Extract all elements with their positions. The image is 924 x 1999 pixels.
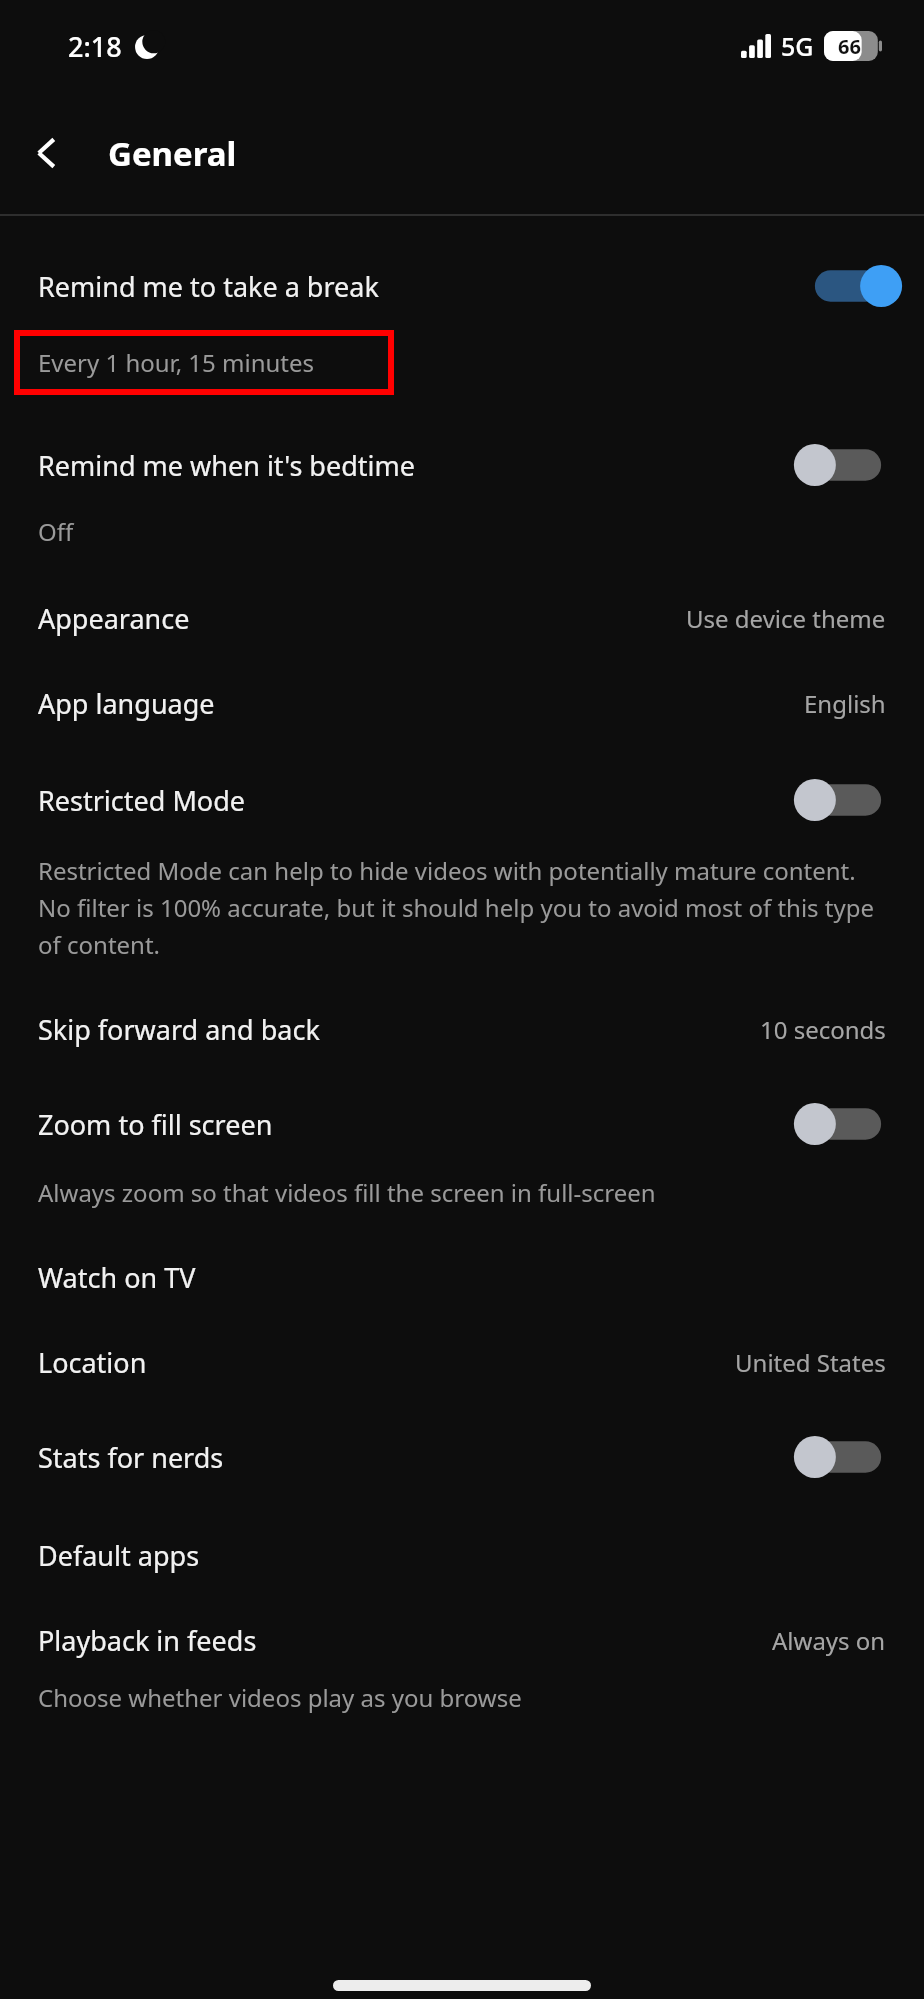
staticText: General — [108, 131, 237, 176]
staticText: United States — [735, 1346, 886, 1379]
staticText: Appearance — [38, 600, 686, 637]
button[interactable]: Remind me to take a break — [0, 216, 924, 395]
staticText: Playback in feeds — [38, 1622, 772, 1659]
staticText: App language — [38, 685, 804, 722]
staticText: Always zoom so that videos fill the scre… — [38, 1176, 656, 1209]
staticText: 2:18 — [68, 28, 122, 65]
staticText: Stats for nerds — [38, 1439, 802, 1476]
button[interactable]: App language — [0, 637, 924, 722]
button[interactable]: Default apps — [0, 1485, 924, 1574]
button[interactable]: Toggle on — [802, 258, 894, 314]
button[interactable]: Playback in feeds — [0, 1574, 924, 1714]
button[interactable]: Toggle off — [802, 772, 894, 828]
staticText: 5G — [781, 29, 814, 63]
staticText: Choose whether videos play as you browse — [38, 1681, 522, 1714]
button[interactable]: Skip forward and back — [0, 961, 924, 1048]
staticText: Every 1 hour, 15 minutes — [38, 346, 315, 379]
button[interactable]: Watch on TV — [0, 1209, 924, 1296]
button[interactable]: Back — [14, 120, 80, 186]
button[interactable]: Appearance — [0, 548, 924, 637]
staticText: Remind me to take a break — [38, 268, 802, 305]
button[interactable]: Restricted Mode — [0, 722, 924, 961]
staticText: Always on — [772, 1624, 886, 1657]
button[interactable]: Stats for nerds — [0, 1381, 924, 1485]
staticText: Zoom to fill screen — [38, 1106, 802, 1143]
button[interactable]: Remind me when it's bedtime — [0, 395, 924, 548]
button[interactable]: Toggle off — [802, 1429, 894, 1485]
button[interactable]: Toggle off — [802, 437, 894, 493]
staticText: Use device theme — [686, 602, 886, 635]
staticText: Restricted Mode — [38, 782, 802, 819]
staticText: Restricted Mode can help to hide videos … — [38, 854, 876, 961]
staticText: English — [804, 687, 886, 720]
staticText: 10 seconds — [760, 1013, 886, 1046]
staticText: Watch on TV — [38, 1259, 886, 1296]
staticText: Skip forward and back — [38, 1011, 760, 1048]
staticText: Off — [38, 515, 74, 548]
staticText: 66 — [838, 33, 861, 60]
staticText: Location — [38, 1344, 735, 1381]
button[interactable]: Toggle off — [802, 1096, 894, 1152]
button[interactable]: Zoom to fill screen — [0, 1048, 924, 1209]
button[interactable]: Location — [0, 1296, 924, 1381]
staticText: Default apps — [38, 1537, 886, 1574]
staticText: Remind me when it's bedtime — [38, 447, 802, 484]
